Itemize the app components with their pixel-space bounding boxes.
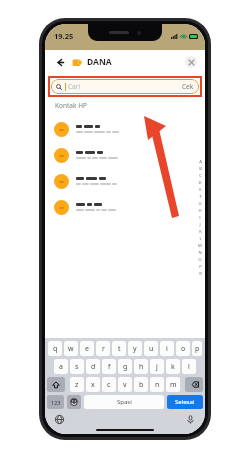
button[interactable]: m — [166, 377, 180, 392]
button[interactable]: Selesai — [167, 395, 203, 409]
button[interactable]: Emoji — [67, 395, 81, 409]
button[interactable]: b — [134, 377, 148, 392]
staticText: r — [102, 344, 105, 354]
button[interactable]: d — [86, 359, 100, 374]
staticText: c — [107, 380, 111, 390]
staticText: m — [170, 380, 177, 390]
button[interactable]: g — [118, 359, 132, 374]
staticText: Cek — [182, 82, 194, 91]
staticText: F — [199, 194, 202, 200]
staticText: k — [171, 362, 175, 372]
button[interactable]: Spasi — [84, 395, 164, 409]
staticText: h — [139, 362, 144, 372]
button[interactable]: i — [160, 341, 174, 356]
button[interactable]: r — [96, 341, 110, 356]
button[interactable]: Cari — [56, 79, 194, 94]
button[interactable]: Close — [185, 56, 197, 68]
button[interactable]: f — [102, 359, 116, 374]
button[interactable]: o — [176, 341, 190, 356]
button[interactable]: Back — [53, 55, 67, 69]
button[interactable]: t — [112, 341, 126, 356]
staticText: z — [75, 380, 79, 390]
button[interactable]: Shift — [47, 377, 65, 392]
button[interactable]: v — [118, 377, 132, 392]
staticText: e — [85, 344, 89, 354]
staticText: K — [199, 229, 202, 235]
staticText: H — [198, 208, 202, 214]
staticText: D — [198, 180, 202, 186]
staticText: s — [75, 362, 79, 372]
staticText: G — [198, 201, 202, 207]
button[interactable]: n — [150, 377, 164, 392]
button[interactable]: Language — [53, 413, 66, 426]
button[interactable] — [54, 194, 196, 220]
staticText: v — [123, 380, 127, 390]
staticText: x — [91, 380, 95, 390]
staticText: I — [199, 215, 201, 221]
staticText: N — [198, 250, 202, 256]
staticText: u — [149, 344, 154, 354]
button[interactable]: 123 — [47, 395, 64, 409]
staticText: R — [199, 271, 202, 277]
button[interactable]: l — [182, 359, 196, 374]
staticText: E — [199, 187, 202, 193]
button[interactable]: u — [144, 341, 158, 356]
staticText: a — [59, 362, 63, 372]
staticText: l — [188, 362, 190, 372]
staticText: w — [68, 344, 74, 354]
staticText: Spasi — [117, 398, 132, 406]
staticText: Cari — [68, 82, 81, 91]
button[interactable]: p — [192, 341, 202, 356]
button[interactable]: h — [134, 359, 148, 374]
staticText: DANA — [87, 56, 112, 68]
staticText: P — [199, 264, 202, 270]
staticText: y — [133, 344, 137, 354]
staticText: 19.25 — [54, 31, 74, 41]
staticText: i — [166, 344, 168, 354]
staticText: Selesai — [175, 398, 195, 406]
button[interactable] — [54, 116, 196, 142]
staticText: q — [53, 344, 58, 354]
button[interactable]: k — [166, 359, 180, 374]
button[interactable]: s — [70, 359, 84, 374]
staticText: n — [155, 380, 160, 390]
staticText: o — [181, 344, 186, 354]
button[interactable]: x — [86, 377, 100, 392]
button[interactable] — [54, 142, 196, 168]
button[interactable]: a — [54, 359, 68, 374]
button[interactable]: y — [128, 341, 142, 356]
button[interactable]: q — [48, 341, 62, 356]
staticText: C — [199, 173, 202, 179]
staticText: B — [199, 166, 202, 172]
staticText: g — [123, 362, 128, 372]
staticText: f — [108, 362, 111, 372]
staticText: L — [199, 236, 202, 242]
button[interactable]: e — [80, 341, 94, 356]
staticText: j — [156, 362, 158, 372]
button[interactable]: Voice input — [184, 413, 197, 426]
staticText: p — [195, 344, 200, 354]
staticText: O — [198, 257, 202, 263]
button[interactable]: w — [64, 341, 78, 356]
button[interactable]: z — [70, 377, 84, 392]
staticText: t — [118, 344, 121, 354]
staticText: Kontak HP — [55, 101, 87, 110]
staticText: J — [199, 222, 201, 228]
button[interactable]: j — [150, 359, 164, 374]
staticText: 123 — [51, 399, 61, 406]
button[interactable] — [54, 168, 196, 194]
staticText: A — [199, 159, 202, 165]
staticText: d — [91, 362, 96, 372]
button[interactable]: Backspace — [185, 377, 203, 392]
staticText: b — [139, 380, 144, 390]
staticText: M — [198, 243, 202, 249]
button[interactable]: c — [102, 377, 116, 392]
